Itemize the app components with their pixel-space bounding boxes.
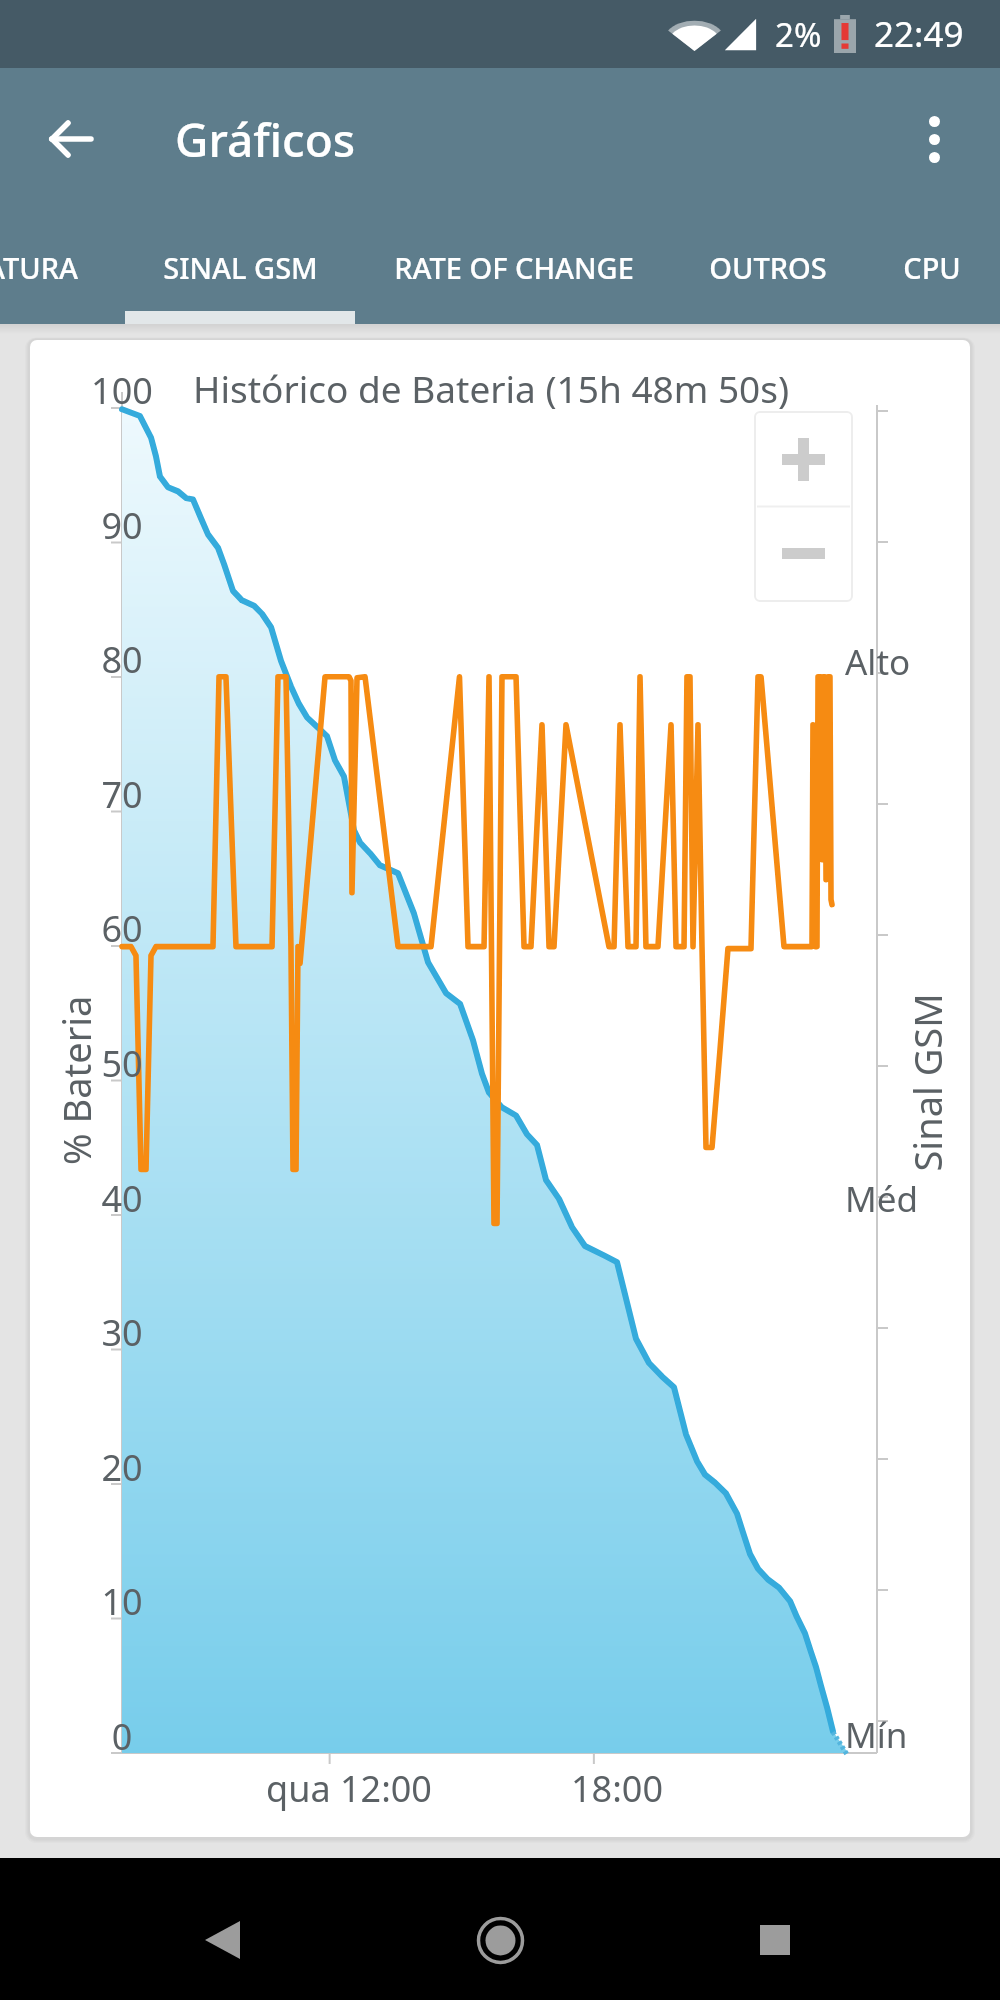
staticText: OUTROS — [709, 248, 827, 287]
staticText: 100 — [42, 366, 202, 415]
button[interactable]: More options — [890, 95, 978, 183]
staticText: RATE OF CHANGE — [394, 248, 634, 287]
staticText: 40 — [42, 1174, 202, 1223]
staticText: % Bateria — [50, 995, 100, 1165]
staticText: 30 — [42, 1308, 202, 1357]
staticText: 60 — [42, 904, 202, 953]
staticText: 20 — [42, 1443, 202, 1492]
button[interactable]: OUTROS — [673, 210, 863, 324]
staticText: Alto — [845, 638, 911, 686]
staticText: 50 — [42, 1039, 202, 1088]
staticText: 70 — [42, 770, 202, 819]
staticText: Histórico de Bateria (15h 48m 50s) — [193, 363, 790, 413]
button[interactable]: Recent apps — [715, 1880, 835, 2000]
staticText: 18:00 — [571, 1764, 664, 1813]
staticText: CPU — [903, 248, 961, 287]
staticText: Méd — [845, 1175, 919, 1223]
button[interactable]: Home — [440, 1880, 560, 2000]
staticText: Mín — [845, 1711, 908, 1759]
button[interactable]: ATURA — [0, 210, 125, 324]
staticText: qua 12:00 — [266, 1764, 432, 1813]
button[interactable]: SINAL GSM — [125, 210, 355, 324]
staticText: 2% — [775, 12, 822, 57]
button[interactable]: CPU — [863, 210, 1000, 324]
staticText: Sinal GSM — [900, 992, 950, 1171]
staticText: 22:49 — [874, 10, 964, 58]
staticText: ATURA — [0, 248, 78, 287]
staticText: Gráficos — [175, 108, 356, 171]
button[interactable]: Back — [162, 1880, 282, 2000]
staticText: 80 — [42, 635, 202, 684]
button[interactable]: RATE OF CHANGE — [355, 210, 673, 324]
button[interactable]: Zoom out — [755, 506, 852, 601]
staticText: 10 — [42, 1577, 202, 1626]
button[interactable]: Zoom in — [755, 412, 852, 507]
staticText: 90 — [42, 501, 202, 550]
staticText: 0 — [42, 1712, 202, 1761]
button[interactable]: Back — [26, 95, 114, 183]
staticText: SINAL GSM — [163, 248, 318, 287]
